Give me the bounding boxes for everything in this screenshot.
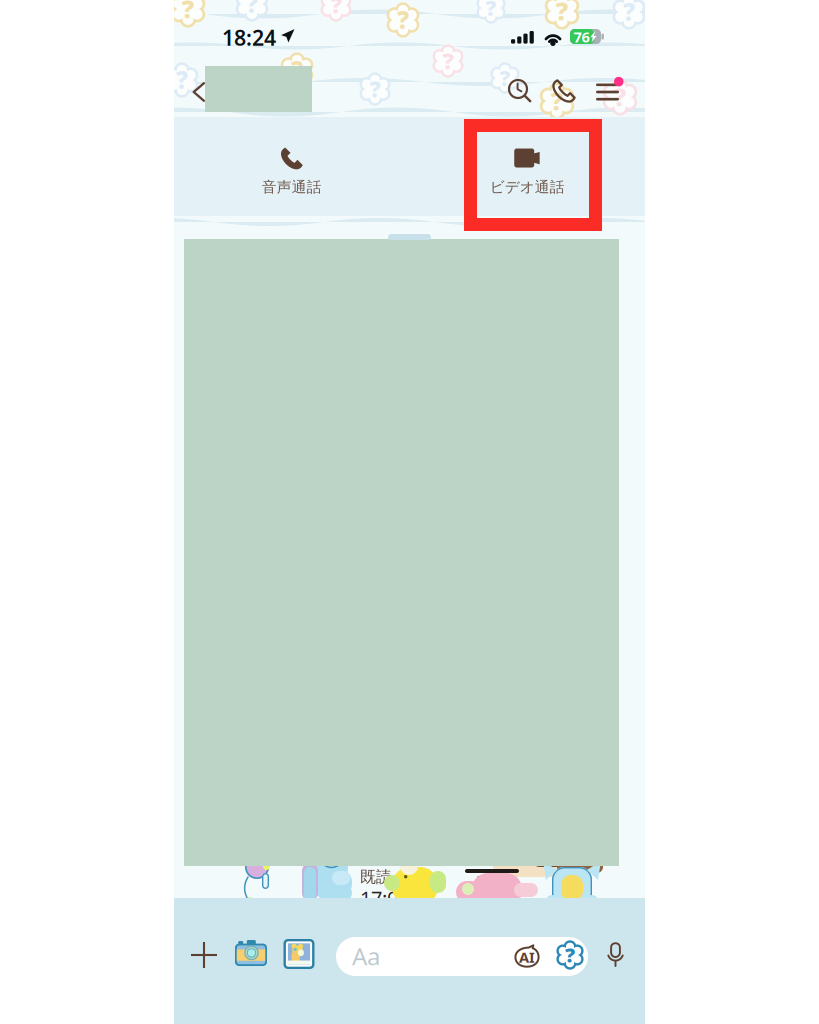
staticText: AI [519, 947, 535, 967]
staticText: ? [613, 80, 626, 113]
staticText: ? [369, 74, 380, 104]
staticText: ? [623, 0, 635, 28]
staticText: 17:07 [360, 885, 398, 938]
staticText: ? [330, 0, 341, 20]
staticText: ? [555, 0, 568, 27]
button[interactable]: Search messages [499, 68, 541, 114]
staticText: ? [246, 0, 258, 20]
staticText: 18:24 [222, 23, 276, 52]
staticText: ? [176, 64, 188, 96]
button[interactable]: 音声通話 [174, 117, 409, 216]
button[interactable]: Camera [230, 932, 272, 974]
staticText: ? [181, 0, 194, 25]
staticText: Aa [352, 940, 380, 972]
staticText: 音声通話 [262, 178, 322, 196]
staticText: ? [442, 46, 453, 76]
button[interactable]: Voice message [598, 937, 634, 973]
button[interactable]: Back [181, 69, 217, 115]
button[interactable]: Call [543, 68, 585, 114]
staticText: ? [565, 941, 575, 968]
staticText: ? [397, 4, 409, 36]
staticText: ? [291, 54, 303, 86]
staticText: 76 [573, 27, 589, 47]
staticText: ? [550, 84, 563, 117]
button[interactable]: Menu [589, 69, 631, 115]
staticText: 既読 [360, 867, 392, 887]
button[interactable]: AI assistant [511, 940, 543, 972]
staticText: ビデオ通話 [490, 178, 565, 196]
button[interactable]: ビデオ通話 [409, 117, 645, 216]
button[interactable]: More options [183, 934, 225, 976]
staticText: ? [499, 63, 510, 92]
button[interactable]: Photo library [278, 933, 320, 975]
button[interactable]: Stickers [553, 938, 587, 972]
staticText: ? [485, 0, 496, 22]
